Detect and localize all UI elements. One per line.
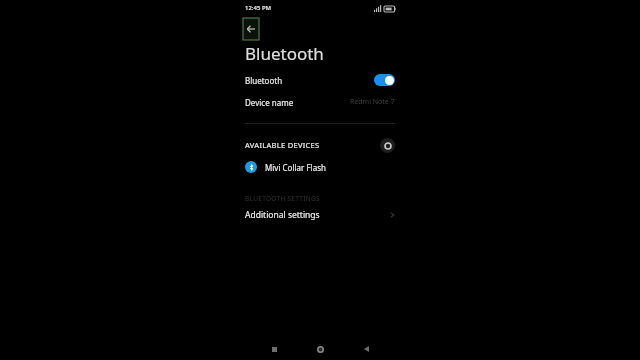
button[interactable]: Bluetooth	[236, 69, 404, 91]
staticText: Bluetooth	[245, 75, 283, 86]
staticText: BLUETOOTH SETTINGS	[245, 194, 320, 203]
staticText: AVAILABLE DEVICES	[245, 140, 320, 150]
button[interactable]: Home	[312, 341, 328, 357]
button[interactable]: Mivi Collar Flash	[236, 156, 404, 178]
button[interactable]: Device name	[236, 91, 404, 113]
button[interactable]: Recents	[266, 341, 282, 357]
staticText: Redmi Note 7	[350, 97, 395, 107]
staticText: Mivi Collar Flash	[265, 162, 326, 173]
button[interactable]: Additional settings	[236, 203, 404, 227]
button[interactable]: Back	[243, 18, 259, 40]
staticText: Bluetooth	[245, 42, 324, 65]
staticText: Device name	[245, 97, 294, 108]
button[interactable]: Back	[358, 341, 374, 357]
staticText: Additional settings	[245, 209, 320, 221]
staticText: 12:45 PM	[245, 4, 272, 12]
button[interactable]: Scan for devices	[380, 138, 395, 153]
